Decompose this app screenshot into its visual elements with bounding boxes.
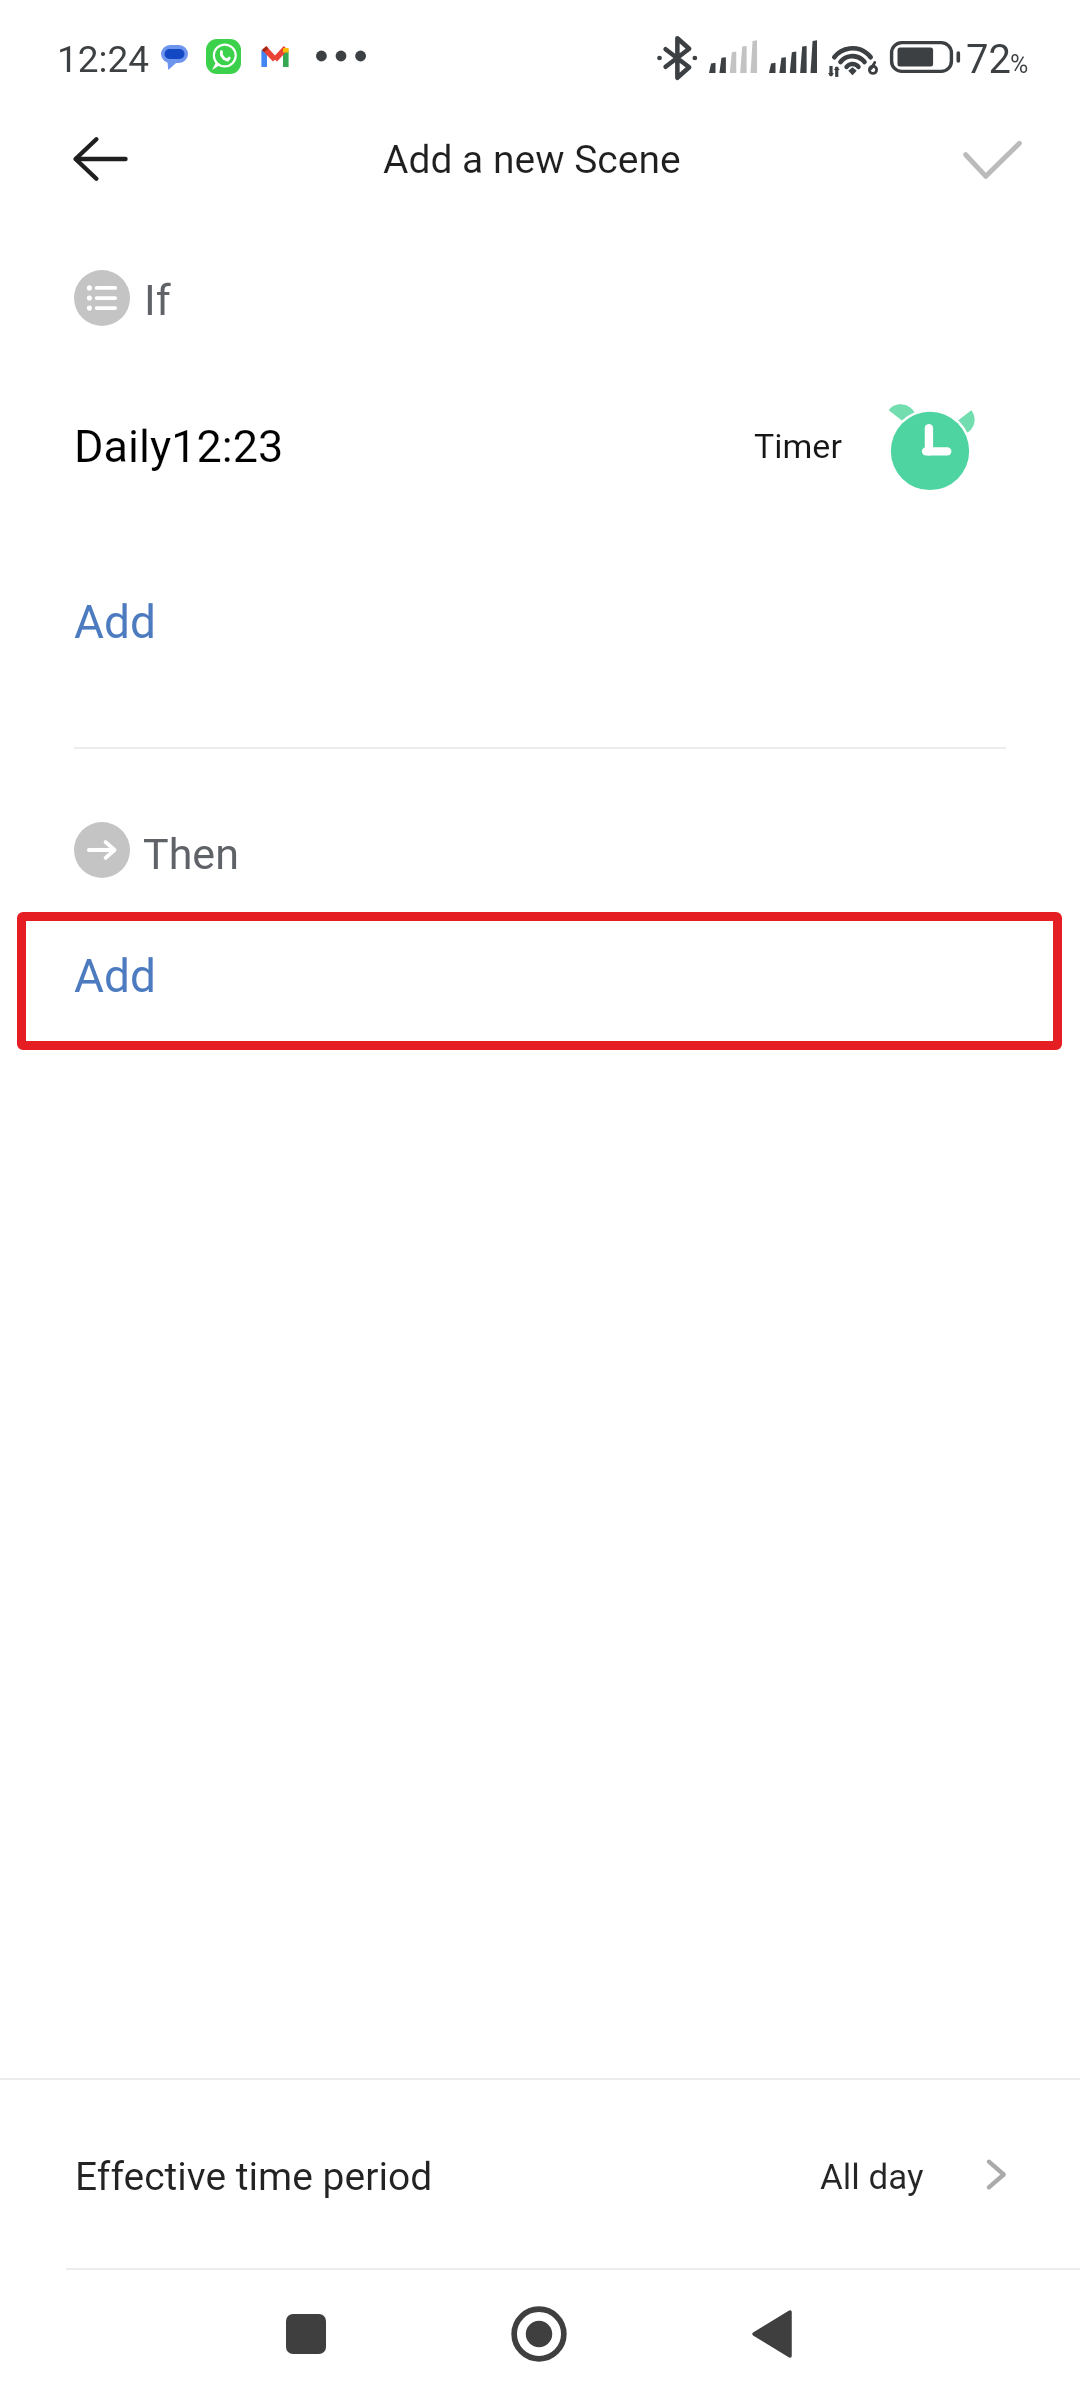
- staticText: 72: [966, 36, 1011, 83]
- button[interactable]: Daily12:23: [0, 388, 1080, 508]
- staticText: Add a new Scene: [383, 137, 681, 183]
- staticText: Effective time period: [75, 2154, 433, 2200]
- staticText: Add: [74, 949, 156, 1003]
- staticText: Timer: [754, 426, 842, 466]
- staticText: All day: [820, 2157, 924, 2198]
- button[interactable]: Add: [17, 912, 1062, 1050]
- button[interactable]: Back: [712, 2274, 832, 2394]
- staticText: Daily12:23: [74, 420, 284, 473]
- button[interactable]: Add: [0, 566, 1080, 678]
- other: Timer alarm: [886, 403, 974, 491]
- button[interactable]: Home: [479, 2274, 599, 2394]
- staticText: If: [144, 275, 171, 325]
- button[interactable]: Confirm: [948, 116, 1036, 204]
- button[interactable]: Recents: [246, 2274, 366, 2394]
- staticText: %: [1010, 50, 1029, 79]
- button[interactable]: Effective time period: [0, 2080, 1080, 2269]
- staticText: 12:24: [57, 38, 150, 81]
- staticText: Add: [74, 595, 156, 649]
- staticText: Then: [143, 829, 239, 879]
- button[interactable]: Back: [56, 115, 144, 203]
